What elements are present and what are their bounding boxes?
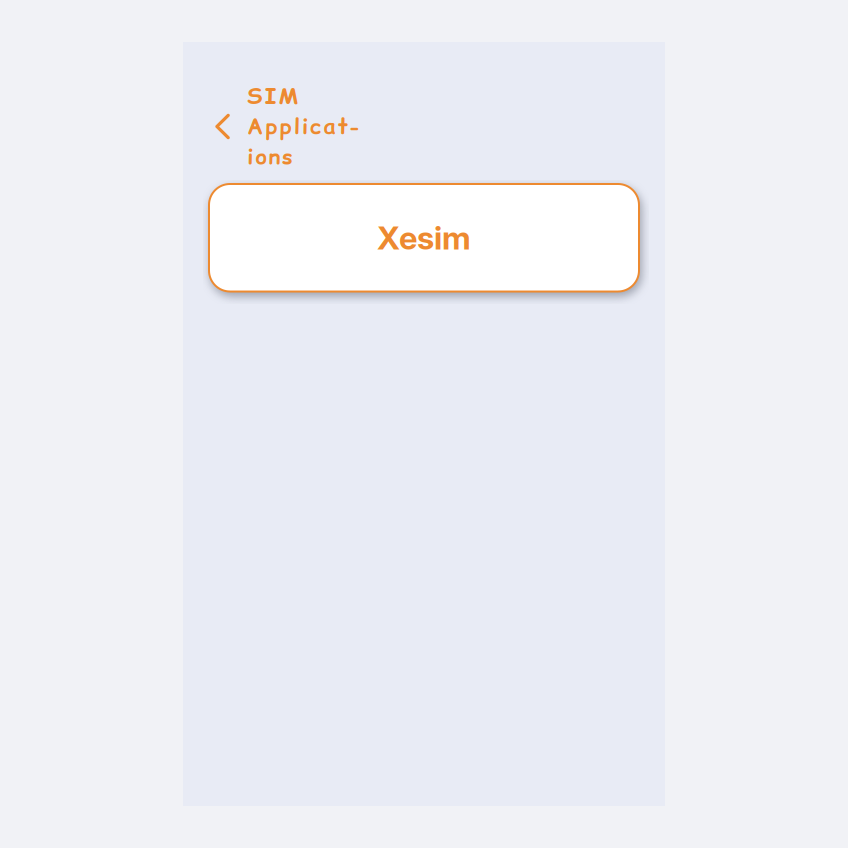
- button[interactable]: Xesim: [209, 184, 639, 291]
- staticText: Xesim: [377, 218, 471, 257]
- staticText: SIM Applications: [247, 81, 369, 172]
- button[interactable]: SIM Applications: [183, 110, 389, 142]
